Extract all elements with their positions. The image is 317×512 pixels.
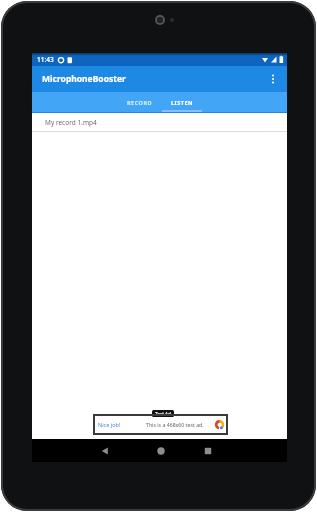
staticText: MicrophoneBooster [42,73,126,85]
button[interactable] [93,439,117,462]
staticText: This is a 468x60 test ad. [146,421,204,428]
button[interactable] [268,74,278,84]
button[interactable] [196,439,220,462]
button[interactable]: My record 1.mp4 [32,113,287,131]
button[interactable]: Nice job! [93,414,228,435]
staticText: 11:43 [37,55,54,64]
staticText: Test Ad [155,411,171,417]
staticText: LISTEN [171,99,193,106]
staticText: My record 1.mp4 [45,118,97,127]
button[interactable]: LISTEN [162,92,202,113]
button[interactable]: RECORD [118,92,162,113]
button[interactable] [149,439,173,462]
staticText: Nice job! [98,421,121,428]
staticText: RECORD [127,99,153,106]
